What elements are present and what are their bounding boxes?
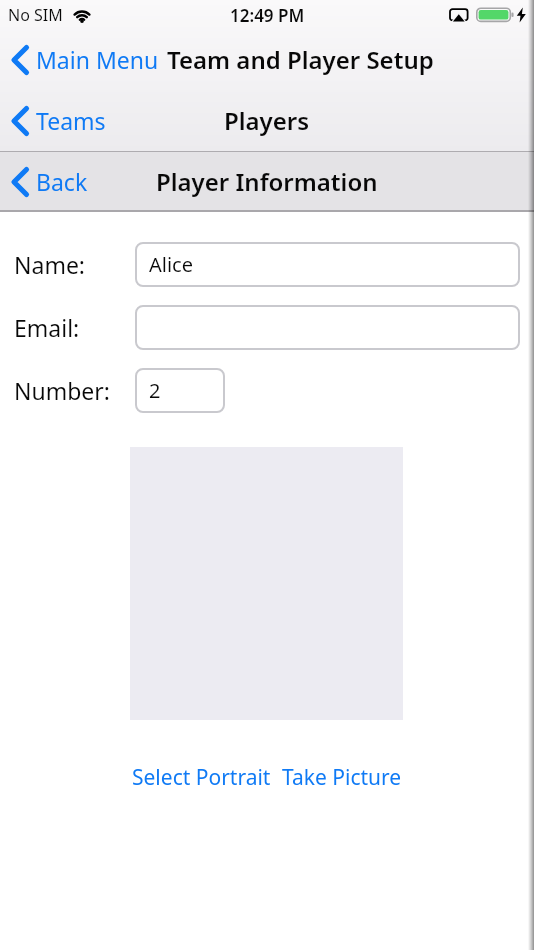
button[interactable]: Alice <box>135 242 520 287</box>
button[interactable]: 2 <box>135 368 225 413</box>
staticText: Alice <box>149 251 193 278</box>
staticText: Players <box>224 104 310 137</box>
button[interactable]: Select Portrait <box>132 763 271 792</box>
button[interactable] <box>135 305 520 350</box>
staticText: Main Menu <box>36 44 159 75</box>
button[interactable]: Teams <box>0 105 106 136</box>
staticText: 2 <box>149 377 161 404</box>
staticText: Number: <box>14 375 110 406</box>
staticText: Player Information <box>156 165 378 198</box>
staticText: No SIM <box>8 4 63 26</box>
staticText: Name: <box>14 249 86 280</box>
staticText: Take Picture <box>282 763 402 792</box>
button[interactable]: Take Picture <box>282 763 402 792</box>
button[interactable]: Back <box>0 166 88 197</box>
staticText: Select Portrait <box>132 763 271 792</box>
staticText: Team and Player Setup <box>167 43 434 76</box>
staticText: Email: <box>14 312 80 343</box>
staticText: 12:49 PM <box>230 4 305 27</box>
staticText: Back <box>36 166 88 197</box>
button[interactable]: Main Menu <box>0 44 159 75</box>
staticText: Teams <box>36 105 106 136</box>
